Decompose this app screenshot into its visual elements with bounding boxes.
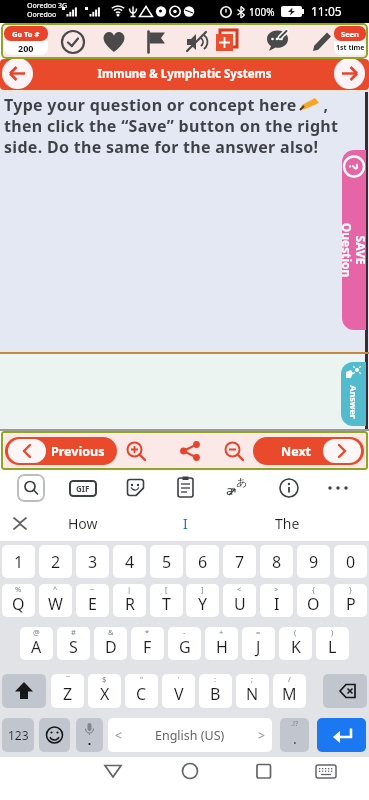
button[interactable]: [8, 512, 32, 536]
button[interactable]: }: [334, 584, 367, 617]
button[interactable]: <: [223, 584, 256, 617]
button[interactable]: a: [224, 475, 250, 501]
button[interactable]: $: [88, 674, 121, 708]
staticText: English (US): [155, 727, 225, 744]
staticText: #: [71, 627, 76, 637]
button[interactable]: [2, 59, 33, 89]
button[interactable]: [100, 758, 126, 784]
button[interactable]: 9: [297, 545, 330, 578]
button[interactable]: [341, 362, 366, 426]
button[interactable]: GIF: [69, 480, 97, 497]
button[interactable]: -: [168, 627, 201, 660]
staticText: <: [115, 727, 122, 743]
button[interactable]: 1: [2, 545, 35, 578]
button[interactable]: [334, 59, 365, 89]
button[interactable]: [179, 440, 201, 462]
button[interactable]: Seen: [334, 26, 366, 55]
button[interactable]: ¯: [51, 674, 84, 708]
button[interactable]: #: [57, 627, 90, 660]
button[interactable]: [317, 718, 366, 752]
button[interactable]: [216, 29, 242, 55]
button[interactable]: [125, 440, 147, 462]
staticText: 11:05: [311, 3, 342, 19]
button[interactable]: 4: [113, 545, 146, 578]
button[interactable]: 2: [39, 545, 72, 578]
button[interactable]: [326, 476, 350, 500]
button[interactable]: ^: [39, 584, 72, 617]
staticText: H: [216, 636, 228, 658]
button[interactable]: 3: [76, 545, 109, 578]
button[interactable]: English (US): [108, 718, 272, 752]
button[interactable]: [173, 475, 198, 500]
button[interactable]: [39, 718, 70, 752]
button[interactable]: [101, 29, 127, 55]
button[interactable]: [265, 29, 291, 55]
button[interactable]: %: [2, 584, 35, 617]
button[interactable]: :: [199, 674, 232, 708]
staticText: V: [174, 683, 184, 705]
button[interactable]: 5: [150, 545, 183, 578]
button[interactable]: ': [162, 674, 195, 708]
button[interactable]: 6: [186, 545, 219, 578]
staticText: C: [136, 683, 147, 705]
button[interactable]: [123, 476, 148, 501]
staticText: The: [275, 514, 300, 533]
button[interactable]: [309, 29, 335, 55]
button[interactable]: [17, 474, 45, 502]
button[interactable]: =: [242, 627, 275, 660]
button[interactable]: ): [316, 627, 349, 660]
button[interactable]: Previous: [5, 437, 117, 465]
button[interactable]: [: [150, 584, 183, 617]
button[interactable]: ": [125, 674, 158, 708]
staticText: 4: [125, 551, 135, 573]
button[interactable]: (: [279, 627, 312, 660]
button[interactable]: 8: [260, 545, 293, 578]
staticText: ]: [201, 584, 204, 594]
staticText: %: [15, 584, 22, 594]
button[interactable]: [184, 29, 210, 55]
button[interactable]: [2, 674, 46, 708]
button[interactable]: [277, 476, 301, 500]
staticText: ": [140, 674, 144, 684]
button[interactable]: Go To #: [4, 26, 48, 55]
button[interactable]: 0: [334, 545, 367, 578]
button[interactable]: [76, 718, 103, 752]
button[interactable]: ~: [76, 584, 109, 617]
staticText: X: [100, 683, 110, 705]
button[interactable]: +: [205, 627, 238, 660]
button[interactable]: [60, 29, 86, 55]
button[interactable]: The: [245, 506, 330, 541]
button[interactable]: [323, 674, 367, 708]
button[interactable]: ]: [186, 584, 219, 617]
button[interactable]: &: [94, 627, 127, 660]
staticText: How: [68, 514, 98, 533]
button[interactable]: {: [297, 584, 330, 617]
button[interactable]: [177, 758, 203, 784]
button[interactable]: [342, 150, 366, 330]
button[interactable]: /: [273, 674, 306, 708]
button[interactable]: [313, 758, 339, 784]
staticText: |: [127, 584, 132, 594]
staticText: ;: [251, 674, 254, 684]
button[interactable]: 7: [223, 545, 256, 578]
staticText: .!?: [291, 718, 299, 728]
staticText: @: [33, 627, 40, 637]
staticText: O: [307, 593, 320, 615]
button[interactable]: |: [113, 584, 146, 617]
staticText: P: [346, 593, 356, 615]
button[interactable]: [143, 29, 169, 55]
button[interactable]: [223, 440, 245, 462]
button[interactable]: @: [20, 627, 53, 660]
staticText: 3: [88, 551, 98, 573]
button[interactable]: ;: [236, 674, 269, 708]
button[interactable]: Next: [253, 437, 364, 465]
staticText: Q: [12, 593, 25, 615]
staticText: -: [183, 627, 186, 637]
button[interactable]: *: [131, 627, 164, 660]
button[interactable]: .!?: [280, 718, 309, 752]
button[interactable]: How: [40, 506, 125, 541]
button[interactable]: 123: [2, 718, 34, 752]
button[interactable]: >: [260, 584, 293, 617]
button[interactable]: I: [143, 506, 228, 541]
button[interactable]: [251, 758, 277, 784]
